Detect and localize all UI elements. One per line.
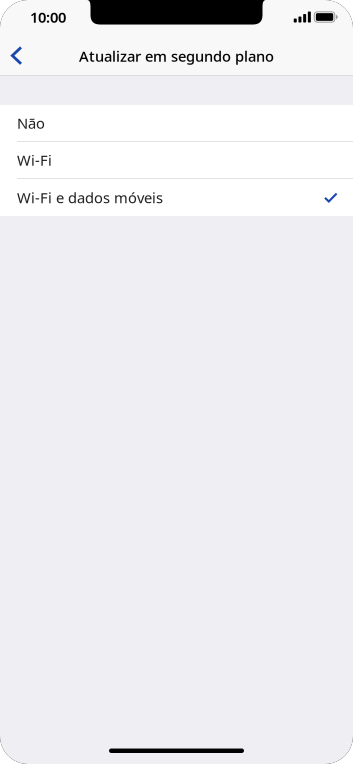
button[interactable]: Não	[0, 105, 353, 141]
button[interactable]: Voltar	[0, 35, 34, 77]
button[interactable]: Wi-Fi e dados móveis	[0, 179, 353, 216]
staticText: 10:00	[30, 7, 66, 27]
button[interactable]: Wi-Fi	[0, 142, 353, 178]
staticText: Atualizar em segundo plano	[79, 46, 274, 66]
staticText: Não	[17, 113, 45, 133]
staticText: Wi-Fi e dados móveis	[17, 188, 163, 207]
staticText: Wi-Fi	[17, 150, 52, 170]
